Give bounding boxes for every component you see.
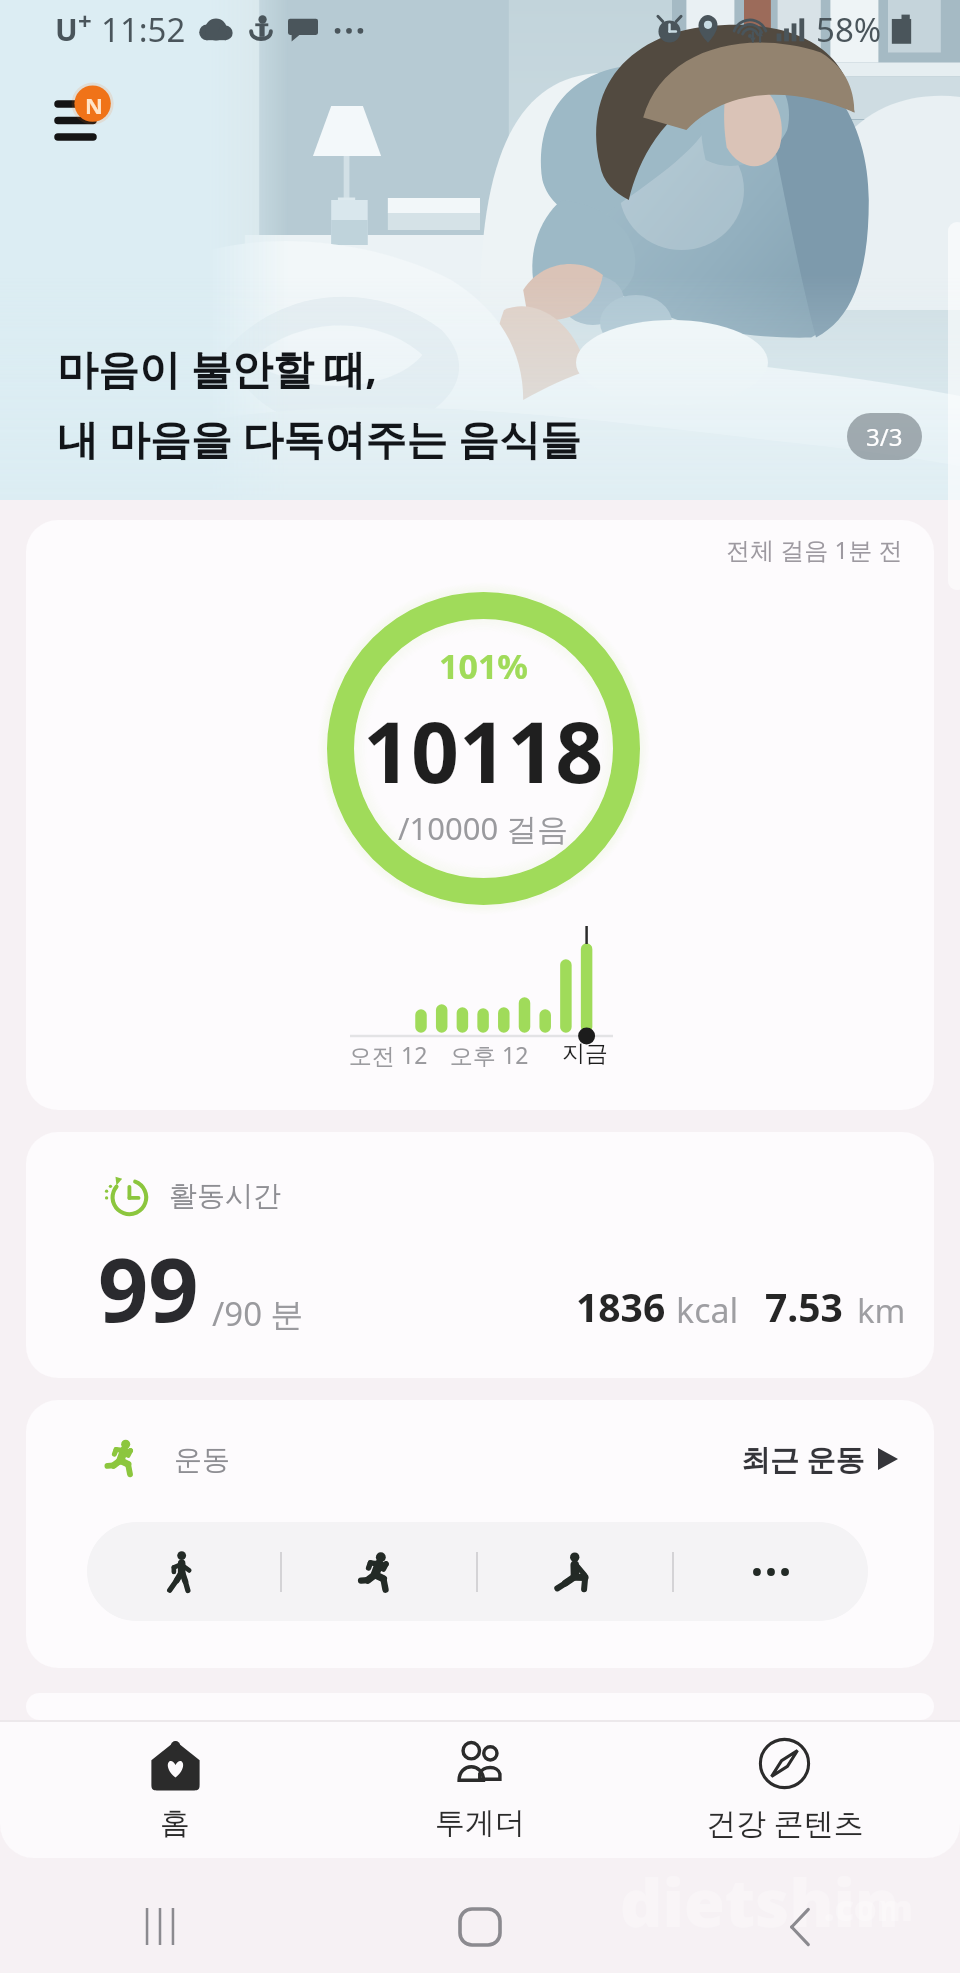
staticText: 11:52 [101,7,186,52]
button[interactable]: Back [640,1869,960,1973]
staticText: 101% [439,643,529,689]
staticText: 3/3 [866,420,903,453]
button[interactable]: 투게더 [327,1720,632,1858]
button[interactable]: 전체 걸음 1분 전 [26,520,934,1110]
button[interactable]: Recents [0,1869,320,1973]
staticText: 최근 운동 [741,1439,865,1479]
staticText: 오전 12 [349,1039,428,1070]
staticText: km [857,1288,906,1333]
staticText: kcal [676,1287,739,1333]
staticText: 1836 [576,1280,666,1333]
button[interactable]: 최근 운동 [741,1439,898,1479]
staticText: 홈 [160,1804,190,1842]
button[interactable]: More exercises [674,1522,868,1621]
staticText: 마음이 불안할 때, [57,340,378,396]
staticText: U [55,9,78,50]
staticText: 10118 [363,693,604,807]
button[interactable]: 3/3 [847,413,922,460]
staticText: 오후 12 [450,1039,529,1070]
staticText: N [85,90,103,120]
staticText: 운동 [174,1442,230,1477]
staticText: 지금 [562,1039,608,1068]
button[interactable]: Running [282,1522,476,1621]
staticText: 7.53 [765,1280,843,1333]
staticText: 내 마음을 다독여주는 음식들 [57,410,581,466]
button[interactable]: Home [320,1869,640,1973]
button[interactable]: 홈 [23,1720,327,1858]
button[interactable]: 활동시간 [26,1132,934,1378]
button[interactable]: 건강 콘텐츠 [632,1720,937,1858]
staticText: /10000 걸음 [398,807,569,849]
staticText: 99 [98,1228,199,1348]
button[interactable]: Stretching [478,1522,672,1621]
staticText: 건강 콘텐츠 [706,1802,864,1843]
button[interactable]: Menu [46,78,120,148]
staticText: 투게더 [435,1804,525,1842]
staticText: 활동시간 [169,1178,281,1213]
staticText: /90 분 [212,1291,304,1336]
staticText: 58% [816,7,882,52]
staticText: + [78,4,92,37]
staticText: dietshin [620,1856,900,1946]
staticText: 전체 걸음 1분 전 [726,533,903,566]
button[interactable]: Walking [87,1522,280,1621]
